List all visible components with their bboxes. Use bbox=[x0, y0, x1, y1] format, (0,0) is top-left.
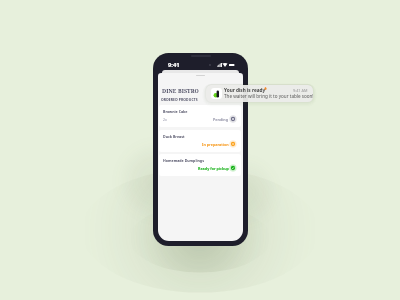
staticText: Ready for pickup bbox=[198, 166, 229, 171]
button[interactable]: Order status: Pending bbox=[229, 115, 237, 123]
staticText: Brownie Cake bbox=[163, 109, 188, 114]
button[interactable]: Your dish is ready bbox=[206, 85, 313, 102]
button[interactable]: Brownie Cake bbox=[159, 105, 241, 127]
staticText: 2x bbox=[163, 117, 167, 122]
staticText: 9:41 bbox=[168, 61, 180, 69]
staticText: The waiter will bring it to your table s… bbox=[224, 93, 313, 99]
staticText: 9:41 AM bbox=[293, 88, 308, 93]
button[interactable]: Order status: Ready for pickup bbox=[229, 164, 237, 172]
staticText: DINE BISTRO bbox=[162, 87, 199, 94]
staticText: Your dish is ready bbox=[224, 87, 266, 93]
staticText: Homemade Dumplings bbox=[163, 158, 204, 163]
button[interactable]: Duck Breast bbox=[159, 130, 241, 152]
button[interactable]: Homemade Dumplings bbox=[159, 154, 241, 176]
staticText: Duck Breast bbox=[163, 134, 185, 139]
staticText: Pending bbox=[213, 117, 229, 122]
button[interactable]: Drag handle bbox=[192, 73, 208, 77]
staticText: In preparation bbox=[202, 142, 229, 147]
button[interactable]: Order status: In preparation bbox=[229, 140, 237, 148]
staticText: ORDERED PRODUCTS bbox=[161, 97, 198, 102]
